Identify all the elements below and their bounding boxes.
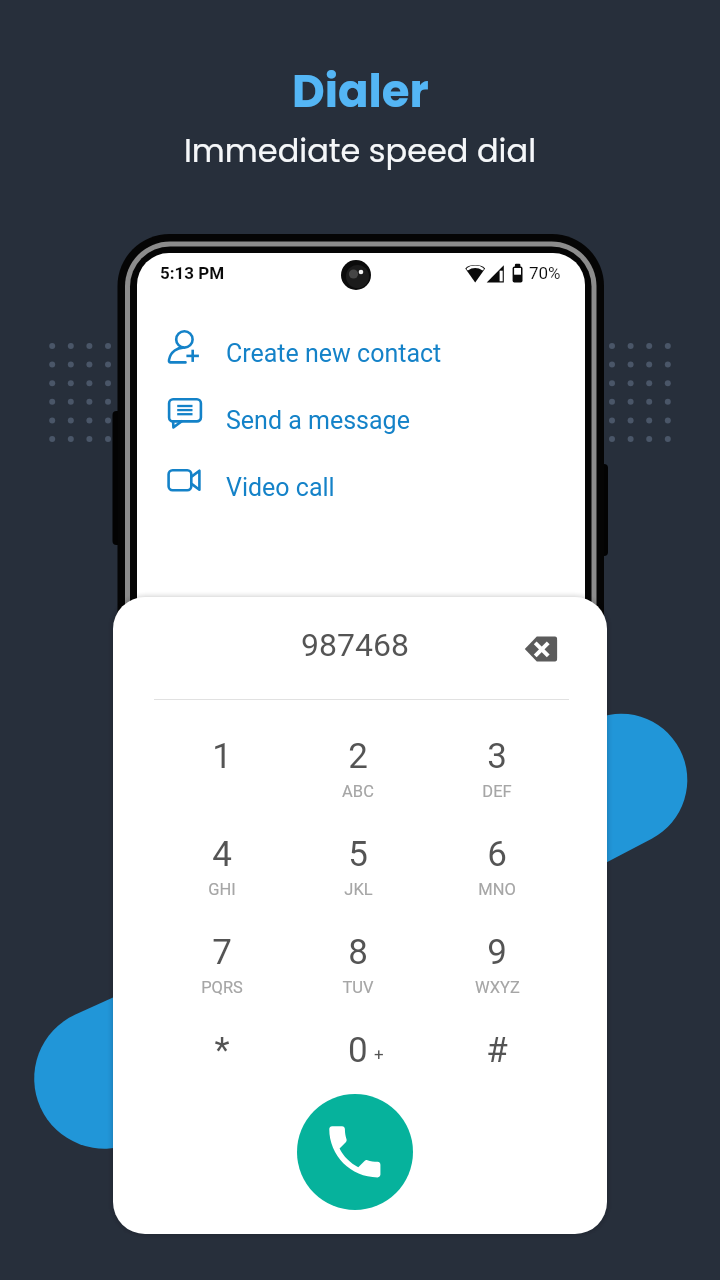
- staticText: Create new contact: [226, 339, 442, 368]
- staticText: DEF: [482, 782, 512, 801]
- staticText: +: [374, 1044, 384, 1064]
- staticText: MNO: [478, 880, 516, 899]
- button[interactable]: 6: [449, 809, 545, 901]
- staticText: Dialer: [292, 60, 429, 123]
- button[interactable]: Backspace: [517, 625, 565, 673]
- button[interactable]: 4: [174, 809, 270, 901]
- staticText: 70%: [529, 263, 561, 283]
- staticText: 9: [487, 932, 507, 968]
- button[interactable]: Video call: [162, 465, 452, 509]
- staticText: 4: [212, 834, 232, 870]
- staticText: WXYZ: [475, 978, 520, 997]
- staticText: 3: [487, 736, 507, 772]
- staticText: GHI: [208, 880, 236, 899]
- button[interactable]: 7: [174, 907, 270, 999]
- staticText: 8: [348, 932, 368, 968]
- button[interactable]: *: [174, 1005, 270, 1097]
- button[interactable]: 8: [310, 907, 406, 999]
- button[interactable]: Call: [297, 1094, 413, 1210]
- button[interactable]: 9: [449, 907, 545, 999]
- button[interactable]: Create new contact: [162, 331, 452, 375]
- button[interactable]: #: [449, 1005, 545, 1097]
- button[interactable]: 5: [310, 809, 406, 901]
- staticText: JKL: [344, 880, 373, 899]
- staticText: *: [214, 1030, 230, 1066]
- staticText: Video call: [226, 473, 335, 502]
- button[interactable]: Send a message: [162, 398, 452, 442]
- button[interactable]: 3: [449, 711, 545, 803]
- button[interactable]: 2: [310, 711, 406, 803]
- staticText: 5:13 PM: [160, 263, 225, 283]
- staticText: 987468: [301, 626, 409, 664]
- staticText: Immediate speed dial: [184, 128, 537, 173]
- staticText: Send a message: [226, 406, 410, 435]
- button[interactable]: 1: [174, 711, 270, 803]
- staticText: 0: [348, 1030, 368, 1066]
- staticText: 6: [487, 834, 507, 870]
- staticText: 1: [212, 736, 232, 772]
- staticText: #: [486, 1030, 508, 1066]
- staticText: ABC: [342, 782, 374, 801]
- staticText: 5: [348, 834, 368, 870]
- button[interactable]: 0: [310, 1005, 406, 1097]
- staticText: PQRS: [201, 978, 243, 997]
- staticText: 7: [212, 932, 232, 968]
- staticText: 2: [348, 736, 368, 772]
- staticText: TUV: [342, 978, 374, 997]
